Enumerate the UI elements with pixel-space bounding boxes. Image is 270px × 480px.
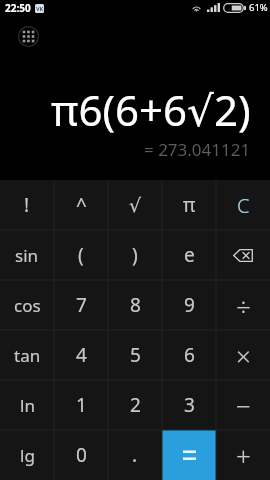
button[interactable]: √ [108, 180, 162, 230]
button[interactable]: C [216, 180, 270, 230]
staticText: + [236, 438, 251, 473]
staticText: = 273.041121 [144, 138, 251, 161]
button[interactable]: 9 [162, 280, 216, 330]
staticText: . [132, 442, 138, 468]
staticText: e [184, 242, 195, 268]
button[interactable]: 5 [108, 330, 162, 380]
button[interactable]: 4 [54, 330, 108, 380]
staticText: lg [20, 444, 35, 467]
button[interactable]: . [108, 430, 162, 480]
staticText: ) [132, 242, 138, 268]
button[interactable]: sin [0, 230, 54, 280]
staticText: ( [78, 242, 84, 268]
staticText: 4 [76, 342, 87, 368]
button[interactable]: e [162, 230, 216, 280]
staticText: π6(6+6√2) [51, 81, 251, 138]
staticText: 9 [184, 292, 195, 318]
staticText: ! [24, 192, 30, 218]
staticText: ^ [76, 192, 87, 218]
staticText: × [236, 338, 251, 373]
button[interactable]: + [216, 430, 270, 480]
button[interactable]: lg [0, 430, 54, 480]
button[interactable]: 3 [162, 380, 216, 430]
button[interactable]: − [216, 380, 270, 430]
button[interactable]: × [216, 330, 270, 380]
button[interactable]: ) [108, 230, 162, 280]
staticText: 22:50 [5, 1, 31, 15]
button[interactable]: ^ [54, 180, 108, 230]
button[interactable]: ln [0, 380, 54, 430]
staticText: 61% [249, 1, 268, 14]
button[interactable]: ! [0, 180, 54, 230]
button[interactable]: ÷ [216, 280, 270, 330]
button[interactable]: π [162, 180, 216, 230]
button[interactable]: Backspace [216, 230, 270, 280]
button[interactable]: 8 [108, 280, 162, 330]
staticText: 2 [130, 392, 141, 418]
staticText: cos [14, 294, 41, 317]
staticText: 7 [76, 292, 87, 318]
staticText: π [183, 192, 196, 218]
staticText: ln [20, 394, 35, 417]
button[interactable]: cos [0, 280, 54, 330]
button[interactable]: ( [54, 230, 108, 280]
button[interactable]: 0 [54, 430, 108, 480]
staticText: √ [129, 194, 142, 216]
staticText: 5 [130, 342, 141, 368]
staticText: − [236, 388, 251, 423]
staticText: C [237, 192, 250, 219]
staticText: 0 [76, 442, 87, 468]
button[interactable]: Keypad [13, 21, 43, 51]
staticText: 1 [76, 392, 87, 418]
button[interactable]: 6 [162, 330, 216, 380]
button[interactable] [162, 430, 216, 480]
staticText: sin [15, 244, 39, 267]
staticText: VK [36, 5, 44, 12]
staticText: 6 [184, 342, 195, 368]
button[interactable]: 7 [54, 280, 108, 330]
staticText: 8 [130, 292, 141, 318]
staticText: 3 [184, 392, 195, 418]
button[interactable]: tan [0, 330, 54, 380]
staticText: tan [14, 344, 41, 367]
button[interactable]: 1 [54, 380, 108, 430]
staticText: ÷ [236, 288, 251, 323]
button[interactable]: 2 [108, 380, 162, 430]
